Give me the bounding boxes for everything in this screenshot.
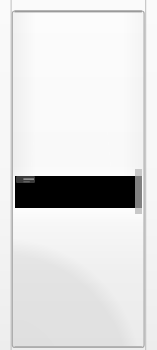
button[interactable]: Scroll bar [135,169,142,214]
button[interactable]: Label [16,176,35,183]
button[interactable]: Label [15,176,136,208]
